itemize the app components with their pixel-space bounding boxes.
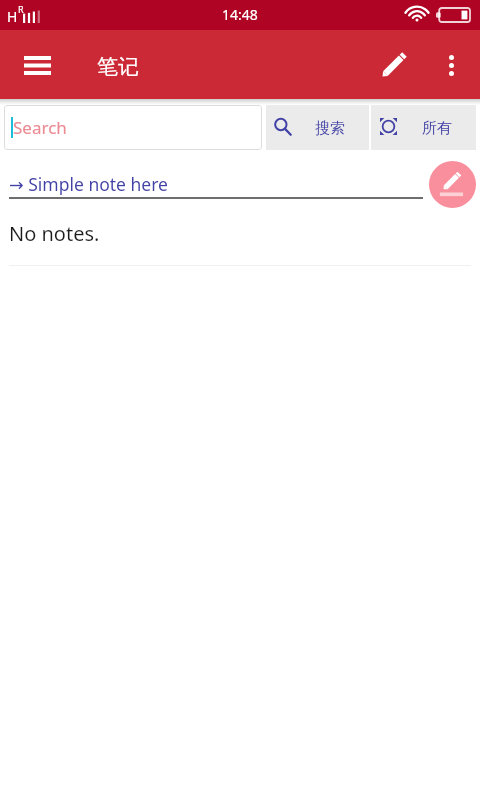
button[interactable]: Menu xyxy=(14,42,60,88)
staticText: No notes. xyxy=(9,220,100,247)
staticText: → Simple note here xyxy=(9,172,168,196)
button[interactable]: Search xyxy=(4,105,262,150)
button[interactable]: New note xyxy=(429,161,476,208)
staticText: Search xyxy=(13,116,67,139)
staticText: H xyxy=(7,7,18,26)
staticText: 搜索 xyxy=(315,119,345,138)
button[interactable]: 搜索 xyxy=(266,105,369,150)
staticText: 所有 xyxy=(422,119,452,138)
button[interactable]: → Simple note here xyxy=(9,172,168,196)
button[interactable]: 所有 xyxy=(371,105,476,150)
button[interactable]: More options xyxy=(431,45,472,86)
staticText: 14:48 xyxy=(222,5,258,24)
button[interactable]: Edit xyxy=(371,41,418,88)
staticText: R xyxy=(18,3,24,15)
staticText: 笔记 xyxy=(97,54,139,80)
